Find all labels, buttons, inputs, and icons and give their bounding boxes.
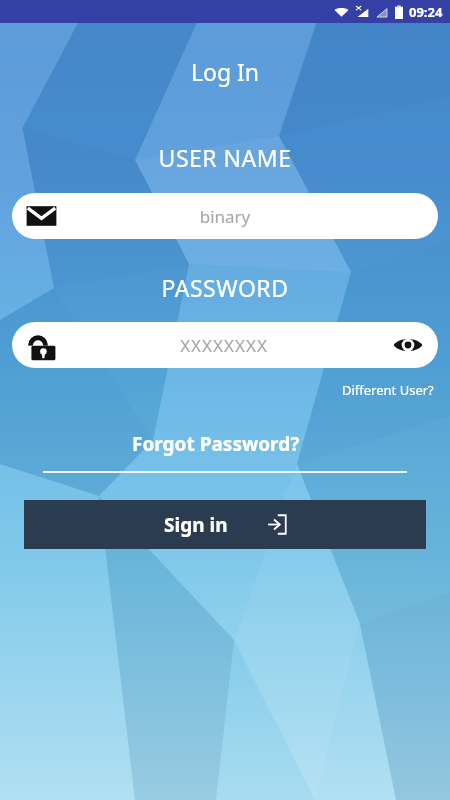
button[interactable]: XXXXXXXX [12, 322, 438, 368]
button[interactable]: Different User? [340, 379, 436, 401]
staticText: PASSWORD [0, 272, 450, 303]
button[interactable]: binary [12, 193, 438, 239]
staticText: Different User? [342, 381, 434, 399]
button[interactable]: Sign in [24, 500, 426, 549]
staticText: binary [57, 205, 393, 228]
staticText: Forgot Password? [132, 431, 300, 457]
staticText: USER NAME [0, 142, 450, 173]
staticText: Sign in [164, 512, 228, 538]
button[interactable]: Show password [392, 329, 424, 361]
staticText: 09:24 [409, 3, 443, 21]
staticText: XXXXXXXX [56, 334, 392, 357]
button[interactable]: Forgot Password? [128, 429, 304, 459]
staticText: Log In [0, 56, 450, 87]
